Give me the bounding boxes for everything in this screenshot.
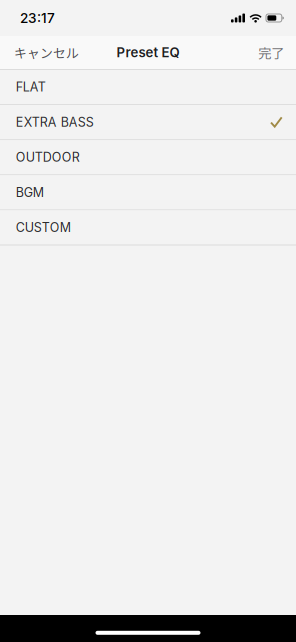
- button[interactable]: OUTDOOR: [0, 140, 296, 175]
- button[interactable]: EXTRA BASS: [0, 105, 296, 140]
- staticText: 23:17: [20, 10, 55, 26]
- staticText: FLAT: [16, 79, 46, 95]
- staticText: 完了: [258, 43, 284, 62]
- button[interactable]: キャンセル: [0, 36, 87, 69]
- staticText: BGM: [16, 185, 44, 200]
- staticText: CUSTOM: [16, 220, 71, 235]
- button[interactable]: BGM: [0, 175, 296, 210]
- button[interactable]: 完了: [250, 36, 296, 69]
- button[interactable]: CUSTOM: [0, 210, 296, 245]
- staticText: Preset EQ: [116, 44, 179, 60]
- staticText: EXTRA BASS: [16, 115, 94, 130]
- button[interactable]: FLAT: [0, 70, 296, 105]
- staticText: キャンセル: [14, 43, 79, 62]
- staticText: OUTDOOR: [16, 150, 80, 165]
